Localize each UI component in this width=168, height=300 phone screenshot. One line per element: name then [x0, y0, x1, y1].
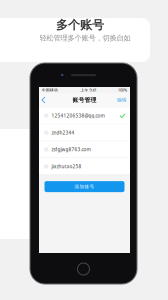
staticText: jiazhutao258 [51, 163, 81, 170]
staticText: zsfgjwg8763.com [51, 146, 90, 153]
button[interactable]: Back [39, 93, 48, 107]
button[interactable]: 12541206538@qq.com [39, 107, 130, 124]
button[interactable]: 添加账号 [44, 181, 124, 192]
staticText: 编辑 [117, 97, 127, 103]
staticText: 12541206538@qq.com [51, 112, 104, 119]
staticText: 添加账号 [74, 184, 94, 190]
staticText: 上午 9:41 [80, 87, 96, 93]
button[interactable]: 编辑 [114, 93, 130, 107]
button[interactable]: jiazhutao258 [39, 158, 130, 175]
staticText: 轻松管理多个账号，切换自如 [39, 33, 130, 43]
staticText: 账号管理 [72, 96, 96, 104]
staticText: 中国移动 [42, 88, 59, 92]
staticText: 100% [118, 87, 127, 93]
button[interactable]: zndh2344 [39, 124, 130, 141]
staticText: 多个账号 [56, 17, 104, 32]
staticText: zndh2344 [51, 129, 74, 136]
button[interactable]: zsfgjwg8763.com [39, 141, 130, 158]
